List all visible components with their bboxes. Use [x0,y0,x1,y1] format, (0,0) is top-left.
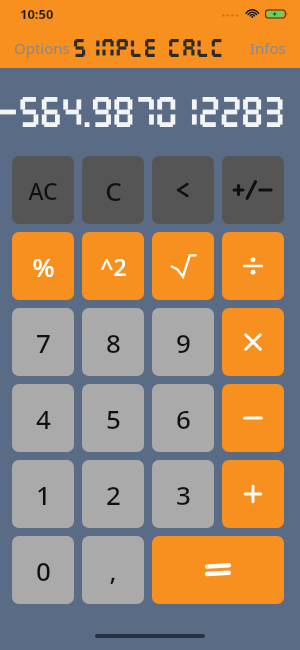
staticText: 9 [176,325,191,360]
staticText: 1 [36,477,51,512]
button[interactable]: 3 [152,460,214,528]
button[interactable]: 7 [12,308,74,376]
staticText: 2 [106,477,121,512]
staticText: ^2 [100,251,127,282]
button[interactable]: Options [0,30,84,66]
button[interactable]: 2 [82,460,144,528]
staticText: 10:50 [20,5,54,23]
staticText: 7 [36,325,51,360]
button[interactable]: AC [12,156,74,224]
button[interactable]: 5 [82,384,144,452]
button[interactable]: ^2 [82,232,144,300]
button[interactable]: C [82,156,144,224]
button[interactable]: Divide [222,232,284,300]
button[interactable]: 6 [152,384,214,452]
button[interactable]: Backspace [152,156,214,224]
staticText: % [32,249,55,284]
button[interactable]: 4 [12,384,74,452]
button[interactable]: Equals [152,536,284,604]
staticText: 0 [36,553,51,588]
button[interactable]: % [12,232,74,300]
staticText: , [109,553,117,588]
staticText: Infos [250,38,286,58]
staticText: AC [28,175,58,206]
button[interactable]: Square root [152,232,214,300]
staticText: 6 [176,401,191,436]
button[interactable]: , [82,536,144,604]
button[interactable]: Infos [236,30,300,66]
button[interactable]: 0 [12,536,74,604]
button[interactable]: 9 [152,308,214,376]
staticText: Options [14,38,70,58]
staticText: 3 [176,477,191,512]
button[interactable]: Multiply [222,308,284,376]
button[interactable]: Plus [222,460,284,528]
button[interactable]: Minus [222,384,284,452]
staticText: 4 [36,401,51,436]
staticText: 8 [106,325,121,360]
button[interactable]: Plus minus [222,156,284,224]
staticText: 5 [106,401,121,436]
staticText: C [105,173,122,208]
button[interactable]: 1 [12,460,74,528]
button[interactable]: 8 [82,308,144,376]
